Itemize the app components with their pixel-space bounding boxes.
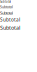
staticText: Subtotal bbox=[0, 0, 11, 4]
staticText: Subtotal bbox=[0, 5, 13, 9]
staticText: Subtotal bbox=[0, 10, 13, 16]
staticText: Subtotal bbox=[0, 17, 20, 23]
staticText: Subtotal bbox=[0, 24, 20, 31]
